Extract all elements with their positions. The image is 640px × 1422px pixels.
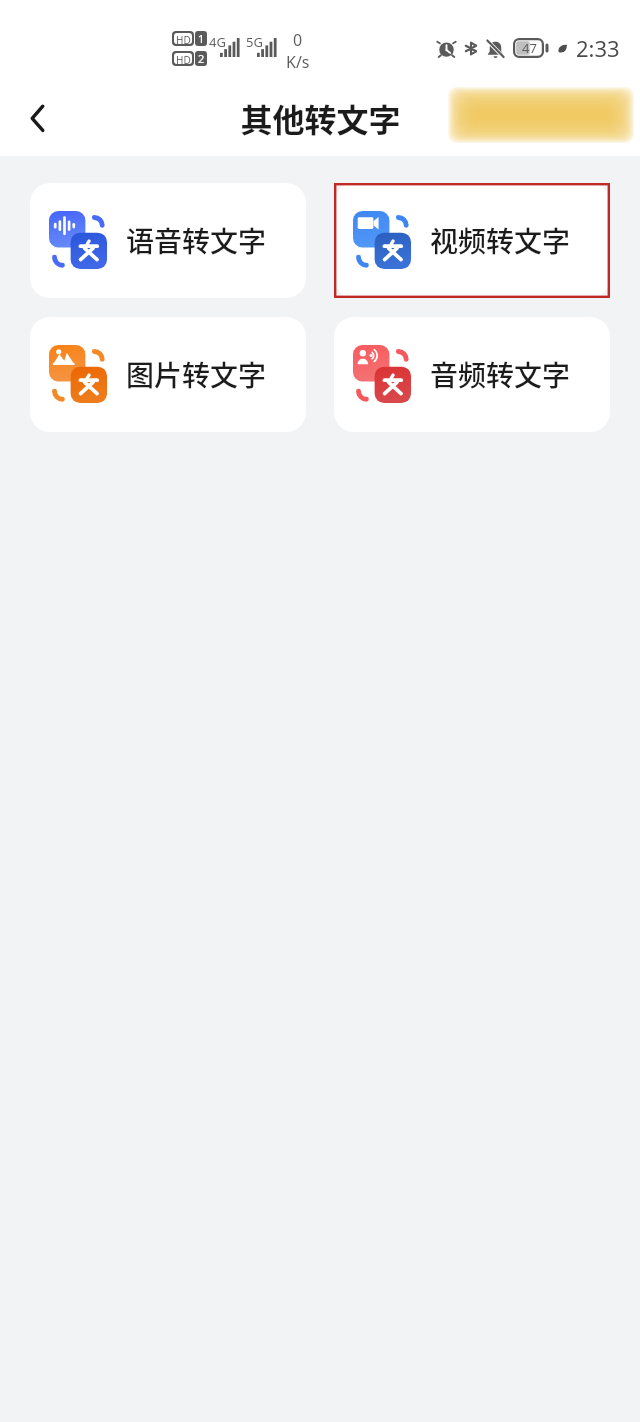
staticText: 1 xyxy=(198,31,205,46)
staticText: 图片转文字 xyxy=(126,354,267,395)
staticText: 4G xyxy=(209,33,226,51)
staticText: HD xyxy=(176,53,191,64)
staticText: 语音转文字 xyxy=(126,220,267,261)
button[interactable]: 视频转文字 xyxy=(334,183,610,298)
staticText: 5G xyxy=(246,33,263,51)
staticText: 其他转文字 xyxy=(240,95,401,141)
staticText: 2 xyxy=(198,51,205,66)
staticText: K/s xyxy=(286,51,310,73)
staticText: HD xyxy=(176,33,191,44)
staticText: 音频转文字 xyxy=(430,354,571,395)
button[interactable]: 图片转文字 xyxy=(30,317,306,432)
button[interactable]: 音频转文字 xyxy=(334,317,610,432)
button[interactable]: 语音转文字 xyxy=(30,183,306,298)
staticText: 0 xyxy=(293,29,303,51)
button[interactable]: Back xyxy=(6,87,68,149)
staticText: 2:33 xyxy=(576,33,620,63)
staticText: 视频转文字 xyxy=(430,220,571,261)
staticText: 47 xyxy=(522,39,537,57)
